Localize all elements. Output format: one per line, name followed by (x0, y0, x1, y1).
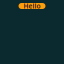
button[interactable]: Hello (18, 3, 45, 9)
staticText: Hello (23, 2, 40, 10)
